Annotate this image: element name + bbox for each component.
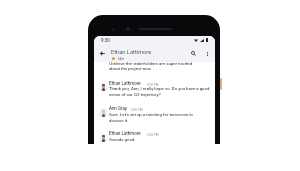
staticText: sense of our Q2 trajectory? [109,92,161,97]
staticText: Thank you, Ann, I really hope so. Do you… [109,86,210,91]
button[interactable]: Avatar [99,108,108,117]
staticText: Ethan Lattimore [111,49,152,56]
button[interactable]: Search [188,48,199,59]
staticText: discuss it. [109,118,129,123]
staticText: Idle [118,56,125,61]
staticText: 9:30 [101,38,110,43]
staticText: Ann Gray [109,106,127,111]
staticText: Ethan Lattimore [109,81,141,86]
button[interactable]: Back [97,48,108,59]
button[interactable]: Avatar [99,133,108,142]
staticText: about the project now. [109,66,152,71]
staticText: Sounds good. [109,137,136,142]
staticText: Ethan Lattimore [109,131,141,136]
staticText: 3:20 PM [147,83,159,87]
staticText: Sure. Let's set up a meeting for tomorro… [109,112,193,117]
staticText: 3:32 PM [147,133,159,137]
button[interactable]: Avatar [99,82,108,91]
staticText: 3:25 PM [131,108,143,112]
button[interactable]: More options [202,48,213,59]
staticText: I believe the stakeholders are super exc… [109,61,193,66]
